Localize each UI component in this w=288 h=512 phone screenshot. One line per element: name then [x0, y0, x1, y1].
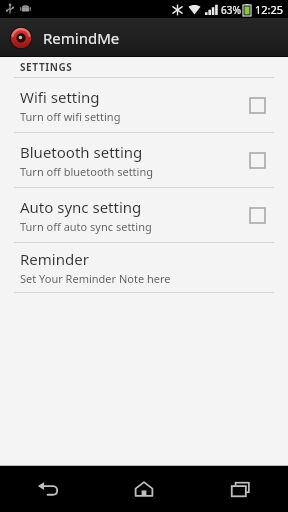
- button[interactable]: Back: [0, 466, 96, 512]
- button[interactable]: Toggle Wifi setting: [244, 92, 270, 118]
- staticText: Wifi setting: [20, 87, 100, 107]
- staticText: Reminder: [20, 249, 89, 269]
- button[interactable]: Toggle Auto sync setting: [244, 202, 270, 228]
- staticText: SETTINGS: [20, 60, 73, 74]
- button[interactable]: Recent apps: [192, 466, 288, 512]
- button[interactable]: Auto sync setting: [0, 188, 288, 242]
- button[interactable]: Home: [96, 466, 192, 512]
- staticText: Turn off bluetooth setting: [20, 164, 153, 179]
- button[interactable]: Toggle Bluetooth setting: [244, 147, 270, 173]
- staticText: Turn off auto sync setting: [20, 219, 152, 234]
- staticText: Auto sync setting: [20, 197, 142, 217]
- button[interactable]: Bluetooth setting: [0, 133, 288, 187]
- staticText: Bluetooth setting: [20, 142, 143, 162]
- staticText: 63%: [221, 3, 241, 17]
- staticText: Turn off wifi setting: [20, 109, 121, 124]
- staticText: RemindMe: [43, 28, 120, 48]
- button[interactable]: Wifi setting: [0, 78, 288, 132]
- button[interactable]: Reminder: [0, 243, 288, 292]
- staticText: Set Your Reminder Note here: [20, 271, 171, 286]
- staticText: 12:25: [255, 2, 284, 17]
